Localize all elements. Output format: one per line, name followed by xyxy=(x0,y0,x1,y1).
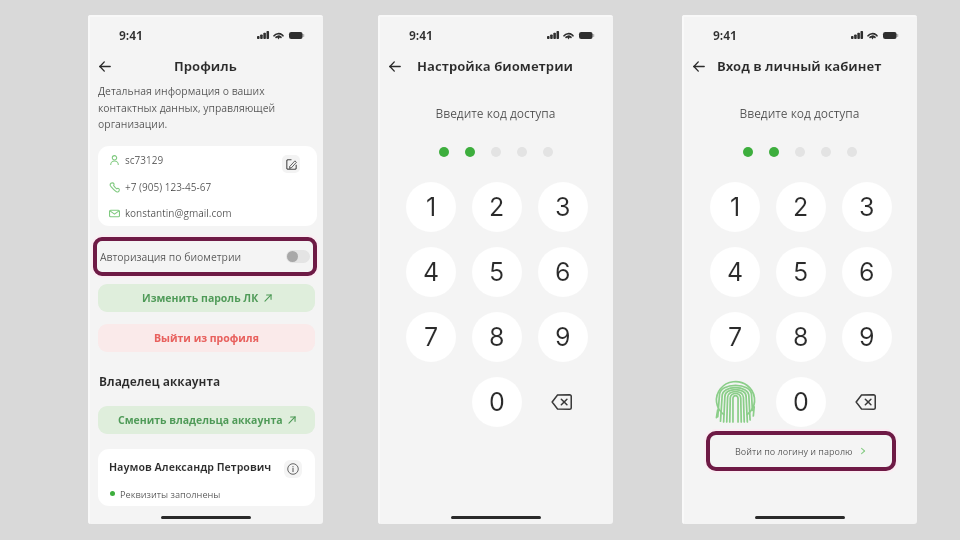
button[interactable]: 1 xyxy=(406,182,456,232)
staticText: Сменить владельца аккаунта xyxy=(118,413,283,427)
button[interactable]: 2 xyxy=(472,182,522,232)
button[interactable]: 9 xyxy=(842,312,892,362)
staticText: Введите код доступа xyxy=(378,105,613,121)
staticText: Владелец аккаунта xyxy=(99,373,221,389)
button[interactable]: 5 xyxy=(776,247,826,297)
button[interactable]: Backspace xyxy=(842,377,892,427)
button[interactable]: Back xyxy=(91,52,119,80)
button[interactable]: Выйти из профиля xyxy=(98,324,315,352)
staticText: sc73129 xyxy=(125,153,164,167)
staticText: 7 xyxy=(424,322,439,352)
staticText: 9:41 xyxy=(409,27,433,43)
staticText: 9:41 xyxy=(119,27,143,43)
button[interactable]: 6 xyxy=(538,247,588,297)
button[interactable]: Backspace xyxy=(538,377,588,427)
staticText: Введите код доступа xyxy=(682,105,917,121)
staticText: 8 xyxy=(793,322,809,352)
button[interactable]: Изменить пароль ЛК xyxy=(98,284,315,312)
staticText: 9 xyxy=(555,322,571,352)
button[interactable]: 8 xyxy=(776,312,826,362)
button[interactable]: 1 xyxy=(710,182,760,232)
staticText: 2 xyxy=(793,192,809,222)
button[interactable]: 4 xyxy=(406,247,456,297)
button[interactable]: 8 xyxy=(472,312,522,362)
button[interactable]: 0 xyxy=(776,377,826,427)
button[interactable]: Fingerprint login xyxy=(710,377,760,427)
button[interactable]: 6 xyxy=(842,247,892,297)
staticText: Настройка биометрии xyxy=(417,57,574,75)
button[interactable]: 7 xyxy=(710,312,760,362)
staticText: 3 xyxy=(555,192,571,222)
button[interactable]: 4 xyxy=(710,247,760,297)
button[interactable]: 5 xyxy=(472,247,522,297)
staticText: 6 xyxy=(555,257,571,287)
button[interactable]: Сменить владельца аккаунта xyxy=(98,406,315,434)
staticText: 6 xyxy=(859,257,875,287)
button[interactable]: 3 xyxy=(538,182,588,232)
staticText: 4 xyxy=(727,257,744,287)
button[interactable]: Войти по логину и паролю xyxy=(706,431,896,471)
staticText: +7 (905) 123-45-67 xyxy=(125,180,212,194)
staticText: 5 xyxy=(793,257,809,287)
staticText: 5 xyxy=(489,257,505,287)
staticText: 0 xyxy=(489,387,505,417)
button[interactable]: Back xyxy=(381,52,409,80)
staticText: 2 xyxy=(489,192,505,222)
staticText: 1 xyxy=(426,192,437,222)
button[interactable]: 7 xyxy=(406,312,456,362)
staticText: Наумов Александр Петрович xyxy=(109,460,272,474)
button[interactable]: Info xyxy=(284,460,302,478)
button[interactable]: Авторизация по биометрии xyxy=(93,237,317,276)
staticText: 3 xyxy=(859,192,875,222)
staticText: 7 xyxy=(728,322,743,352)
button[interactable]: 3 xyxy=(842,182,892,232)
staticText: Реквизиты заполнены xyxy=(120,488,221,498)
staticText: Войти по логину и паролю xyxy=(735,445,853,457)
staticText: konstantin@gmail.com xyxy=(125,206,232,220)
staticText: Профиль xyxy=(174,57,237,75)
staticText: 9 xyxy=(859,322,875,352)
staticText: Авторизация по биометрии xyxy=(100,250,242,264)
staticText: 8 xyxy=(489,322,505,352)
staticText: Вход в личный кабинет xyxy=(717,57,882,75)
button[interactable]: Edit xyxy=(282,155,300,173)
staticText: 4 xyxy=(423,257,440,287)
staticText: Выйти из профиля xyxy=(154,331,259,345)
staticText: Детальная информация о ваших контактных … xyxy=(98,84,318,131)
staticText: Изменить пароль ЛК xyxy=(142,291,259,305)
button[interactable]: 0 xyxy=(472,377,522,427)
button[interactable]: 9 xyxy=(538,312,588,362)
button[interactable]: 2 xyxy=(776,182,826,232)
staticText: 1 xyxy=(730,192,741,222)
staticText: 0 xyxy=(793,387,809,417)
button[interactable]: Back xyxy=(685,52,713,80)
staticText: 9:41 xyxy=(713,27,737,43)
